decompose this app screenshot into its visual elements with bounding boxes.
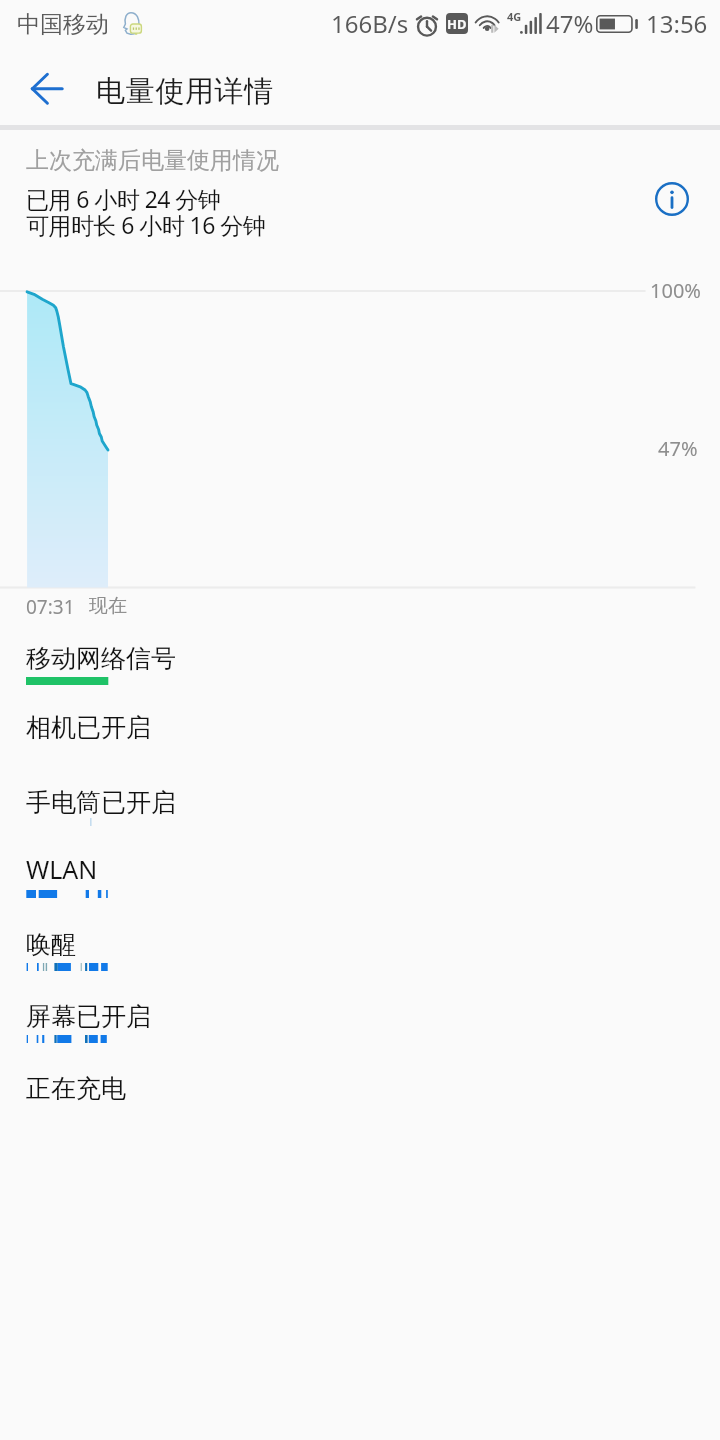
staticText: 相机已开启	[26, 712, 151, 743]
button[interactable]: WLAN	[0, 846, 720, 914]
staticText: 可用时长 6 小时 16 分钟	[26, 209, 266, 240]
button[interactable]: Back	[16, 61, 72, 117]
staticText: 47%	[546, 7, 594, 40]
staticText: 100%	[650, 277, 701, 304]
staticText: 4G	[507, 9, 522, 24]
staticText: 中国移动	[17, 10, 109, 39]
staticText: 13:56	[646, 7, 708, 40]
staticText: 上次充满后电量使用情况	[26, 146, 279, 175]
staticText: 166B/s	[331, 7, 409, 40]
staticText: WLAN	[26, 852, 98, 886]
staticText: 现在	[89, 594, 127, 618]
button[interactable]: 屏幕已开启	[0, 995, 720, 1063]
button[interactable]: 唤醒	[0, 923, 720, 991]
button[interactable]: 正在充电	[0, 1067, 720, 1135]
staticText: 移动网络信号	[26, 643, 176, 674]
staticText: 唤醒	[26, 929, 76, 960]
staticText: 电量使用详情	[96, 73, 274, 110]
staticText: HD	[447, 15, 467, 33]
staticText: 已用 6 小时 24 分钟	[26, 183, 221, 214]
button[interactable]: 移动网络信号	[0, 637, 720, 705]
button[interactable]: 手电筒已开启	[0, 781, 720, 849]
staticText: 屏幕已开启	[26, 1001, 151, 1032]
button[interactable]: 相机已开启	[0, 706, 720, 774]
staticText: 47%	[658, 435, 698, 462]
staticText: 正在充电	[26, 1073, 126, 1104]
staticText: 07:31	[26, 594, 75, 620]
button[interactable]: Info	[646, 173, 698, 225]
staticText: 手电筒已开启	[26, 787, 176, 818]
